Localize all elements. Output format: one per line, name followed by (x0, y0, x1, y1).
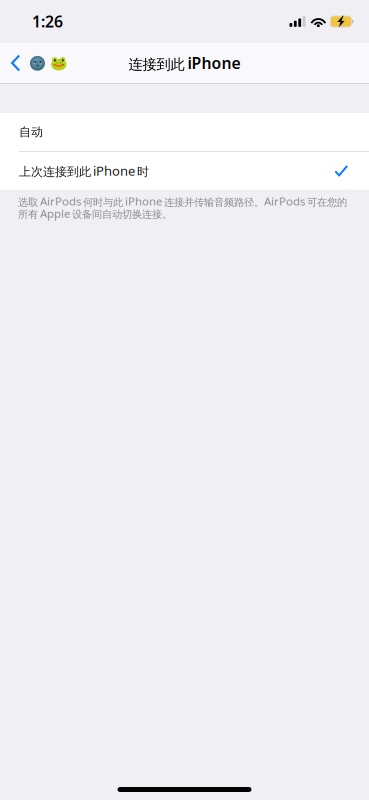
staticText: 自动 (19, 125, 43, 139)
staticText: 连接到此 iPhone (128, 53, 240, 73)
staticText: 🐸 (50, 55, 68, 71)
staticText: 选取 AirPods 何时与此 iPhone 连接并传输音频路径。AirPods… (18, 194, 347, 221)
staticText: 上次连接到此 iPhone 时 (19, 162, 149, 179)
button[interactable]: 上次连接到此 iPhone 时 (0, 152, 369, 190)
button[interactable]: 自动 (0, 113, 369, 151)
staticText: 1:26 (32, 11, 63, 32)
staticText: 🌚 (29, 55, 46, 71)
button[interactable]: Back (0, 43, 78, 83)
